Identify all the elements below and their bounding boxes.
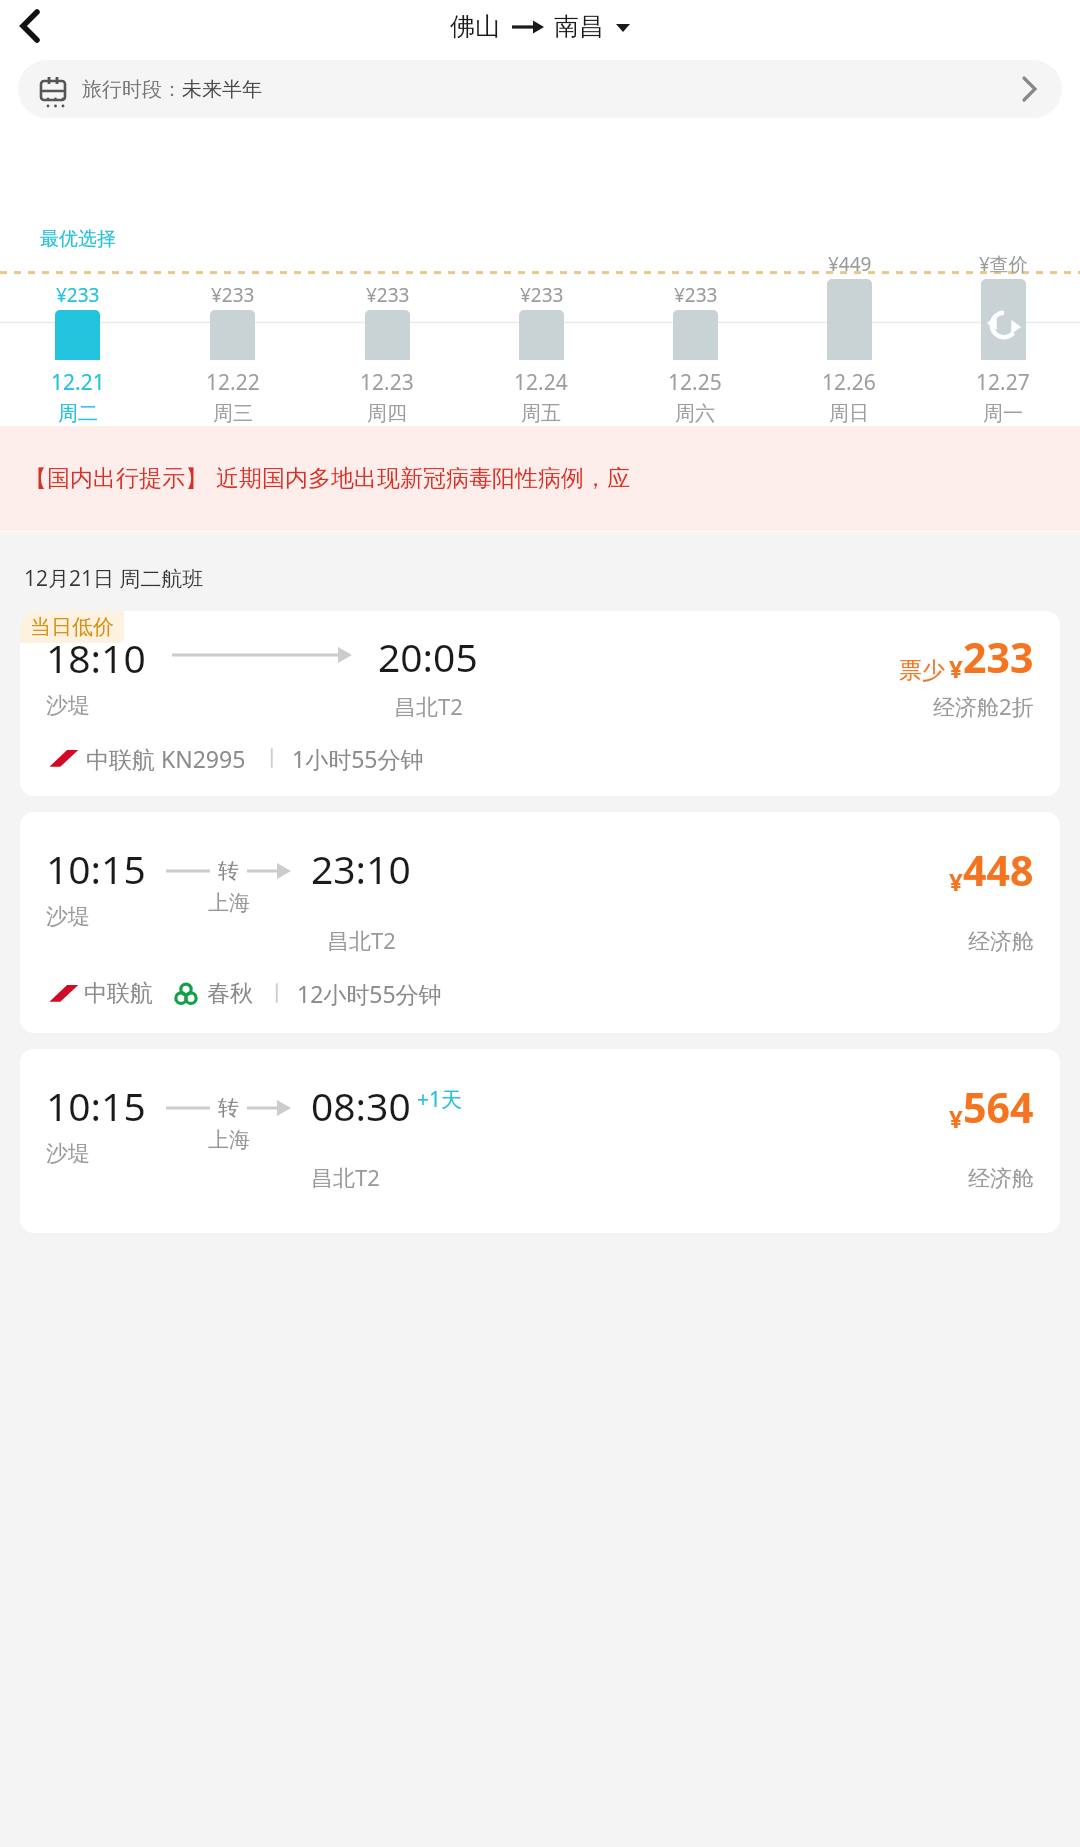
staticText: +1天 [417,1085,463,1114]
staticText: 上海 [208,1127,250,1153]
staticText: 南昌 [554,11,604,42]
staticText: 【国内出行提示】 [24,464,208,493]
staticText: 12.24 [514,368,568,397]
staticText: 10:15 [46,842,146,895]
staticText: 周六 [675,401,715,426]
staticText: 昌北T2 [327,925,396,955]
staticText: 旅行时段： [82,77,182,102]
staticText: 12.26 [822,368,876,397]
button[interactable]: ¥233 [618,126,772,426]
button[interactable]: 旅行时段： [18,60,1062,118]
button[interactable]: ¥233 [310,126,464,426]
staticText: 周日 [829,401,869,426]
staticText: 12.22 [206,368,260,397]
button[interactable]: Back [8,4,52,48]
staticText: 转 [218,1095,239,1121]
staticText: 中联航 KN2995 [86,743,246,774]
staticText: 经济舱 [968,1165,1034,1193]
staticText: 未来半年 [182,77,262,102]
staticText: 沙堤 [46,1140,90,1168]
staticText: ¥233 [366,282,410,308]
staticText: 当日低价 [30,614,114,640]
button[interactable]: ¥449 [772,126,926,426]
staticText: 23:10 [311,842,411,895]
button[interactable]: 最优选择 [0,126,155,426]
button[interactable]: 【国内出行提示】 [0,426,1080,531]
staticText: 转 [218,858,239,884]
staticText: ¥ [949,1102,963,1135]
staticText: 448 [963,842,1034,898]
staticText: 12.21 [51,368,105,397]
button[interactable]: 佛山 [450,11,630,42]
staticText: ¥233 [211,282,255,308]
staticText: 12.25 [668,368,722,397]
staticText: ¥233 [520,282,564,308]
button[interactable]: ¥查价 [926,126,1080,426]
staticText: 经济舱2折 [933,691,1034,721]
staticText: 233 [963,629,1034,685]
staticText: 周二 [58,401,98,426]
button[interactable]: 10:15 [20,812,1060,1033]
staticText: 票少 [899,656,945,685]
staticText: 沙堤 [46,692,90,720]
staticText: 沙堤 [46,903,90,931]
button[interactable]: 18:10 [20,611,1060,796]
staticText: 最优选择 [40,227,116,251]
staticText: 18:10 [46,631,146,684]
staticText: 经济舱 [968,928,1034,956]
staticText: 12小时55分钟 [297,978,442,1009]
staticText: 周五 [521,401,561,426]
button[interactable]: 10:15 [20,1049,1060,1233]
staticText: ¥查价 [979,251,1028,277]
button[interactable]: ¥233 [464,126,618,426]
staticText: 12月21日 周二航班 [24,564,204,593]
staticText: 周一 [983,401,1023,426]
staticText: 佛山 [450,11,500,42]
staticText: 1小时55分钟 [292,743,424,774]
staticText: 丨 [262,746,282,771]
staticText: 上海 [208,890,250,916]
staticText: 昌北T2 [394,691,463,721]
staticText: ¥ [949,865,963,898]
staticText: 10:15 [46,1079,146,1132]
button[interactable]: ¥233 [155,126,310,426]
staticText: 564 [963,1079,1034,1135]
staticText: 昌北T2 [311,1162,380,1192]
staticText: 春秋 [207,979,253,1008]
staticText: 近期国内多地出现新冠病毒阳性病例，应 [216,464,630,493]
staticText: 周四 [367,401,407,426]
staticText: 12.27 [976,368,1030,397]
staticText: 丨 [267,981,287,1006]
staticText: ¥233 [674,282,718,308]
staticText: 08:30 [311,1079,411,1132]
staticText: 中联航 [84,979,153,1008]
staticText: 20:05 [378,630,478,683]
staticText: ¥449 [828,251,872,277]
staticText: ¥233 [56,282,100,308]
staticText: 12.23 [360,368,414,397]
staticText: ¥ [949,652,963,685]
staticText: 周三 [213,401,253,426]
